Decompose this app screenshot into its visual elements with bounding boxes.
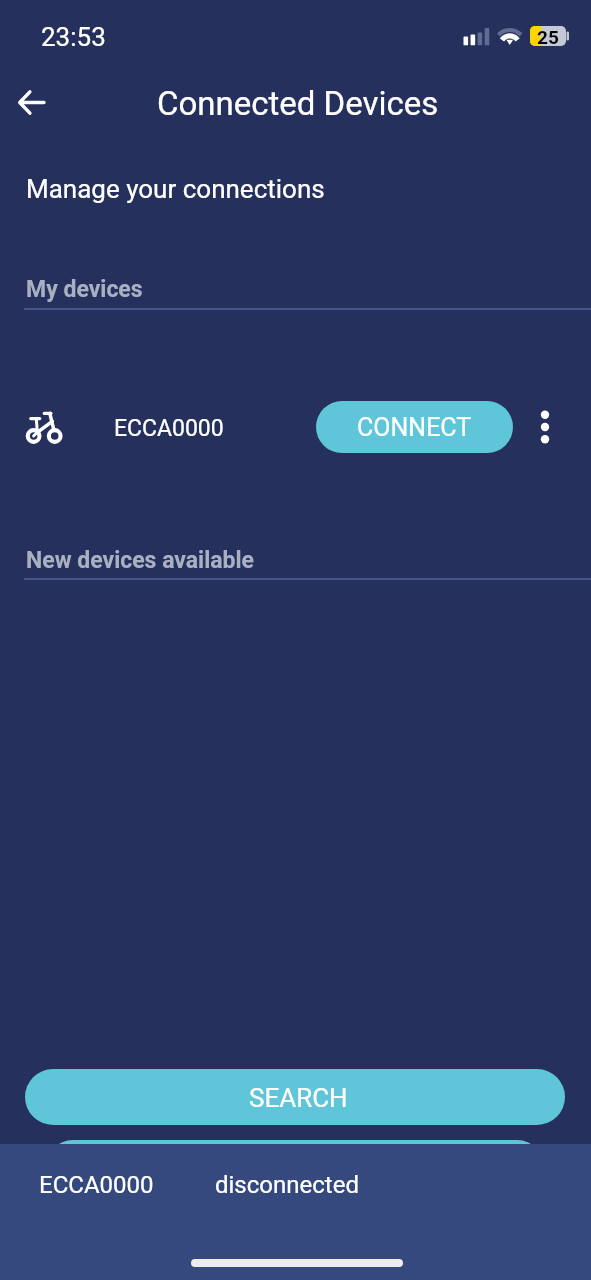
- staticText: My devices: [26, 276, 143, 303]
- staticText: SEARCH: [249, 1083, 348, 1113]
- staticText: Manage your connections: [26, 174, 325, 204]
- staticText: 23:53: [41, 22, 106, 52]
- button[interactable]: More options: [525, 403, 565, 451]
- staticText: 25: [537, 26, 559, 46]
- button[interactable]: SEARCH: [25, 1069, 565, 1125]
- button[interactable]: CONNECT: [316, 401, 513, 453]
- staticText: CONNECT: [357, 413, 472, 442]
- staticText: ECCA0000: [39, 1171, 154, 1199]
- staticText: Connected Devices: [157, 84, 439, 123]
- staticText: disconnected: [215, 1171, 359, 1199]
- staticText: ECCA0000: [114, 415, 224, 442]
- staticText: New devices available: [26, 547, 255, 574]
- button[interactable]: Back: [8, 78, 56, 126]
